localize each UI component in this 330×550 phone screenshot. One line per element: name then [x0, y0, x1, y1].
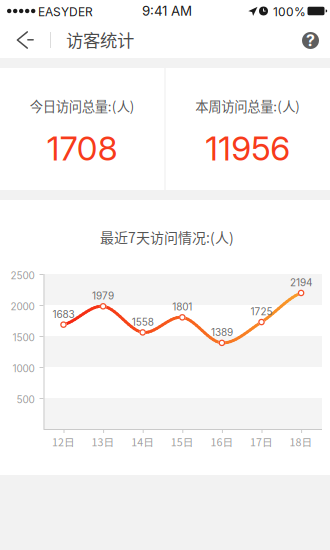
staticText: 17日 [250, 434, 273, 449]
staticText: 100% [273, 4, 306, 19]
staticText: 500 [16, 393, 34, 406]
staticText: 14日 [131, 434, 154, 449]
staticText: 12日 [52, 434, 75, 449]
staticText: ? [306, 31, 315, 50]
staticText: 2000 [10, 300, 34, 313]
staticText: 1389 [211, 326, 233, 338]
staticText: 1683 [52, 308, 74, 320]
staticText: 最近7天访问情况:(人) [100, 227, 234, 247]
staticText: EASYDER [38, 4, 93, 19]
staticText: 15日 [171, 434, 194, 449]
staticText: 本周访问总量:(人) [195, 96, 300, 115]
staticText: 访客统计 [66, 27, 134, 52]
staticText: 16日 [210, 434, 233, 449]
staticText: 1558 [132, 316, 154, 328]
staticText: 1000 [12, 362, 34, 375]
staticText: 18日 [290, 434, 313, 449]
staticText: 今日访问总量:(人) [30, 96, 135, 115]
staticText: 1500 [12, 331, 34, 344]
staticText: 13日 [92, 434, 115, 449]
button[interactable]: Help [292, 22, 328, 58]
staticText: 1708 [47, 128, 118, 169]
staticText: 1801 [172, 301, 192, 313]
staticText: 1725 [250, 306, 272, 318]
staticText: 9:41 AM [142, 3, 192, 19]
staticText: 11956 [205, 128, 290, 169]
staticText: 2500 [10, 269, 34, 282]
button[interactable]: Back [5, 22, 45, 58]
staticText: 2194 [290, 276, 312, 289]
staticText: 1979 [92, 290, 114, 302]
